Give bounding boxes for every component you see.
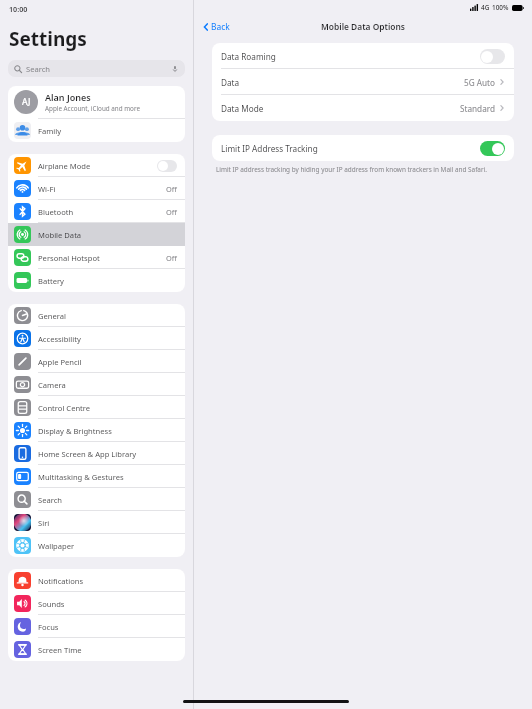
staticText: Home Screen & App Library (38, 449, 177, 459)
staticText: 10:00 (9, 4, 28, 14)
button[interactable]: Accessibility (8, 327, 185, 350)
button[interactable]: Mobile Data (8, 223, 185, 246)
staticText: Search (38, 495, 177, 505)
button[interactable]: Data (212, 69, 514, 95)
staticText: Accessibility (38, 334, 177, 344)
staticText: Focus (38, 622, 177, 632)
button[interactable]: Limit IP Address Tracking (212, 135, 514, 161)
button[interactable]: Sounds (8, 592, 185, 615)
button[interactable]: Control Centre (8, 396, 185, 419)
staticText: Multitasking & Gestures (38, 472, 177, 482)
staticText: Apple Pencil (38, 357, 177, 367)
button[interactable]: Search (8, 488, 185, 511)
staticText: Search (26, 64, 171, 74)
staticText: Mobile Data (38, 230, 177, 240)
staticText: Display & Brightness (38, 426, 177, 436)
button[interactable]: Display & Brightness (8, 419, 185, 442)
button[interactable]: Search (8, 60, 185, 77)
button[interactable]: Wi-Fi (8, 177, 185, 200)
staticText: Data Roaming (221, 51, 480, 62)
staticText: Off (166, 207, 177, 217)
button[interactable]: General (8, 304, 185, 327)
staticText: Data (221, 77, 464, 88)
staticText: Limit IP Address Tracking (221, 143, 480, 154)
button[interactable]: Battery (8, 269, 185, 292)
button[interactable]: Toggle off (480, 49, 505, 64)
staticText: Siri (38, 518, 177, 528)
staticText: Notifications (38, 576, 177, 586)
staticText: Sounds (38, 599, 177, 609)
staticText: Personal Hotspot (38, 253, 166, 263)
button[interactable]: Data Mode (212, 95, 514, 121)
staticText: Screen Time (38, 645, 177, 655)
staticText: Standard (460, 103, 495, 114)
staticText: AJ (22, 96, 31, 108)
staticText: 5G Auto (464, 77, 495, 88)
staticText: Off (166, 253, 177, 263)
staticText: Control Centre (38, 403, 177, 413)
button[interactable]: Back (202, 21, 230, 32)
staticText: Airplane Mode (38, 161, 157, 171)
staticText: Bluetooth (38, 207, 166, 217)
button[interactable]: Apple Pencil (8, 350, 185, 373)
staticText: Family (38, 126, 62, 136)
button[interactable]: Camera (8, 373, 185, 396)
staticText: Camera (38, 380, 177, 390)
staticText: Wi-Fi (38, 184, 166, 194)
staticText: Mobile Data Options (321, 21, 405, 32)
staticText: Back (211, 21, 230, 32)
button[interactable]: Personal Hotspot (8, 246, 185, 269)
staticText: Battery (38, 276, 177, 286)
button[interactable]: Focus (8, 615, 185, 638)
button[interactable]: Wallpaper (8, 534, 185, 557)
button[interactable]: Home Screen & App Library (8, 442, 185, 465)
staticText: 4G (481, 3, 490, 12)
button[interactable]: Toggle on (480, 141, 505, 156)
staticText: General (38, 311, 177, 321)
staticText: Alan Jones (45, 91, 91, 103)
button[interactable]: Bluetooth (8, 200, 185, 223)
button[interactable]: Multitasking & Gestures (8, 465, 185, 488)
staticText: Limit IP address tracking by hiding your… (216, 165, 487, 174)
staticText: Data Mode (221, 103, 460, 114)
button[interactable]: Siri (8, 511, 185, 534)
button[interactable]: Data Roaming (212, 43, 514, 69)
button[interactable]: Airplane Mode (8, 154, 185, 177)
staticText: Wallpaper (38, 541, 177, 551)
staticText: Settings (9, 26, 87, 52)
button[interactable]: Notifications (8, 569, 185, 592)
staticText: Apple Account, iCloud and more (45, 104, 140, 113)
button[interactable]: Screen Time (8, 638, 185, 661)
staticText: Off (166, 184, 177, 194)
button[interactable]: AJ (8, 86, 185, 118)
button[interactable]: Family (8, 119, 185, 142)
button[interactable]: Toggle off (157, 160, 177, 172)
staticText: 100% (492, 3, 509, 12)
